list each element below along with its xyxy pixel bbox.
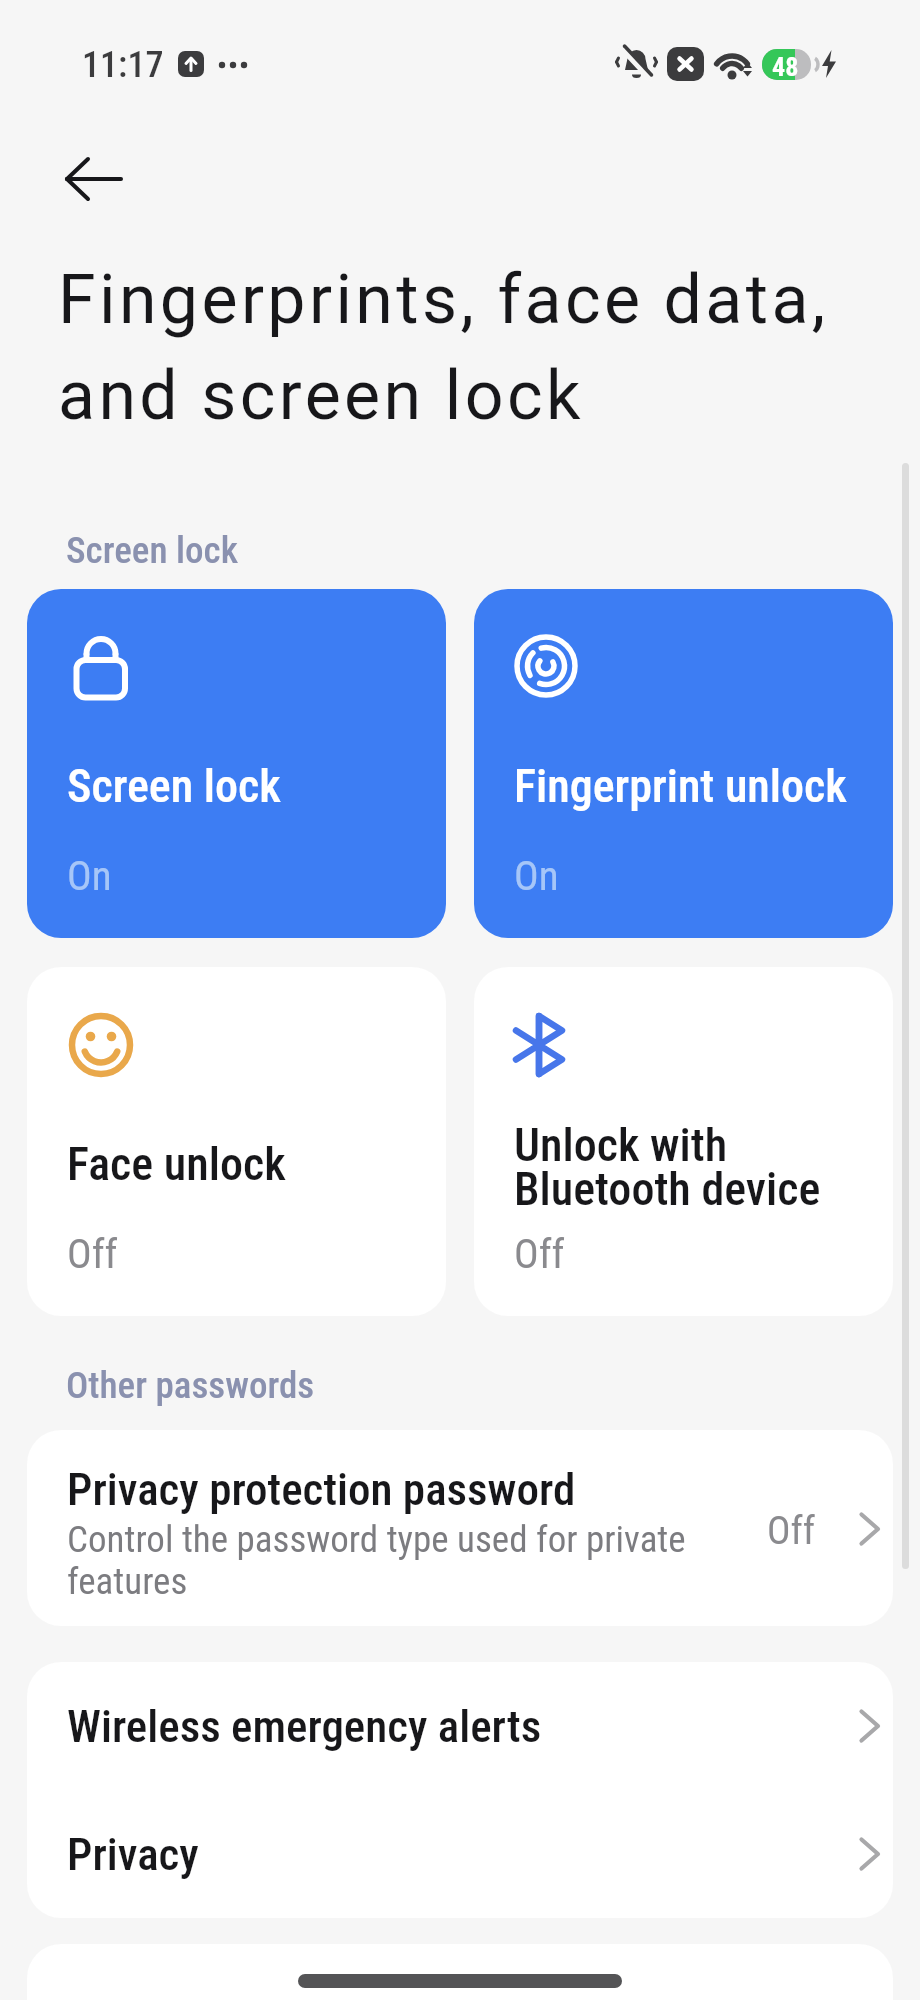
staticText: Privacy	[67, 1828, 199, 1881]
staticText: Off	[514, 1230, 565, 1278]
button[interactable]: Screen lock	[27, 589, 446, 938]
staticText: 48	[772, 52, 799, 82]
staticText: 11:17	[82, 44, 164, 86]
staticText: Wireless emergency alerts	[67, 1700, 542, 1753]
staticText: Fingerprints, face data, and screen lock	[58, 260, 829, 436]
button[interactable]: Unlock with Bluetooth device	[474, 967, 893, 1316]
staticText: Screen lock	[67, 759, 281, 813]
button[interactable]: Fingerprint unlock	[474, 589, 893, 938]
staticText: Privacy protection password	[67, 1463, 576, 1516]
button[interactable]: Privacy	[27, 1790, 893, 1918]
staticText: On	[67, 852, 112, 900]
staticText: Unlock with Bluetooth device	[514, 1118, 821, 1216]
button[interactable]: Privacy protection password	[27, 1430, 893, 1626]
staticText: Off	[767, 1508, 816, 1554]
staticText: Face unlock	[67, 1137, 286, 1191]
staticText: On	[514, 852, 559, 900]
staticText: Control the password type used for priva…	[67, 1518, 686, 1603]
staticText: Off	[67, 1230, 118, 1278]
button[interactable]	[47, 158, 143, 202]
staticText: Fingerprint unlock	[514, 759, 847, 813]
staticText: Screen lock	[66, 529, 238, 572]
button[interactable]: Wireless emergency alerts	[27, 1662, 893, 1790]
button[interactable]: Face unlock	[27, 967, 446, 1316]
staticText: Other passwords	[66, 1364, 315, 1407]
